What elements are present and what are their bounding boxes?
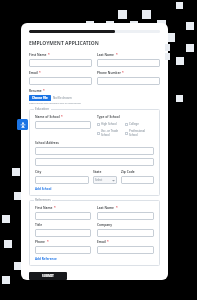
staticText: References xyxy=(35,198,51,202)
staticText: Last Name xyxy=(97,206,115,210)
staticText: Add School xyxy=(35,187,52,191)
staticText: Resume xyxy=(29,89,42,93)
button[interactable] xyxy=(29,77,92,85)
staticText: * xyxy=(39,71,41,75)
button[interactable] xyxy=(35,147,154,155)
button[interactable]: Accessibility options xyxy=(17,119,28,130)
button[interactable]: Select xyxy=(93,176,117,184)
button[interactable]: SUBMIT xyxy=(29,272,67,280)
staticText: No file chosen xyxy=(53,96,72,100)
staticText: Select xyxy=(95,178,103,182)
staticText: Zip Code xyxy=(121,170,135,174)
staticText: EMPLOYMENT APPLICATION xyxy=(29,40,99,47)
staticText: High School xyxy=(101,122,117,126)
staticText: Phone xyxy=(35,240,46,244)
staticText: Name of School xyxy=(35,115,60,119)
button[interactable] xyxy=(97,246,154,254)
button[interactable]: Add Reference xyxy=(35,257,57,261)
button[interactable]: Professional School xyxy=(125,129,154,137)
staticText: Education xyxy=(35,107,50,111)
button[interactable] xyxy=(97,59,160,67)
staticText: First Name xyxy=(29,53,47,57)
staticText: * xyxy=(116,206,118,210)
staticText: Please upload your resume in PDF or Word… xyxy=(29,102,82,105)
button[interactable]: Add School xyxy=(35,187,52,191)
staticText: Add Reference xyxy=(35,257,57,261)
button[interactable] xyxy=(121,176,154,184)
button[interactable]: College xyxy=(125,122,154,126)
staticText: Email xyxy=(97,240,106,244)
staticText: * xyxy=(43,89,45,93)
staticText: Choose File xyxy=(32,96,48,100)
staticText: City xyxy=(35,170,42,174)
button[interactable] xyxy=(35,176,89,184)
button[interactable] xyxy=(97,212,154,220)
staticText: Title xyxy=(35,223,43,227)
button[interactable] xyxy=(97,77,160,85)
staticText: Professional School xyxy=(129,129,154,137)
staticText: * xyxy=(116,53,118,57)
staticText: First Name xyxy=(35,206,53,210)
staticText: SUBMIT xyxy=(42,274,54,278)
staticText: Voc. or Trade School xyxy=(101,129,125,137)
button[interactable] xyxy=(97,229,154,237)
staticText: * xyxy=(47,240,49,244)
staticText: * xyxy=(54,206,56,210)
staticText: * xyxy=(122,71,124,75)
button[interactable]: Choose File xyxy=(32,95,48,101)
staticText: Type of School xyxy=(97,115,120,119)
staticText: Last Name xyxy=(97,53,115,57)
button[interactable]: High School xyxy=(97,122,125,126)
button[interactable]: Voc. or Trade School xyxy=(97,129,125,137)
staticText: Email xyxy=(29,71,38,75)
staticText: * xyxy=(107,240,109,244)
staticText: Company xyxy=(97,223,112,227)
staticText: College xyxy=(129,122,139,126)
button[interactable] xyxy=(35,229,91,237)
button[interactable] xyxy=(29,59,92,67)
staticText: * xyxy=(48,53,50,57)
button[interactable] xyxy=(35,212,91,220)
button[interactable] xyxy=(35,246,91,254)
button[interactable] xyxy=(35,158,154,166)
button[interactable] xyxy=(35,121,91,129)
staticText: State xyxy=(93,170,102,174)
staticText: School Address xyxy=(35,141,59,145)
staticText: * xyxy=(61,115,63,119)
staticText: Phone Number xyxy=(97,71,121,75)
